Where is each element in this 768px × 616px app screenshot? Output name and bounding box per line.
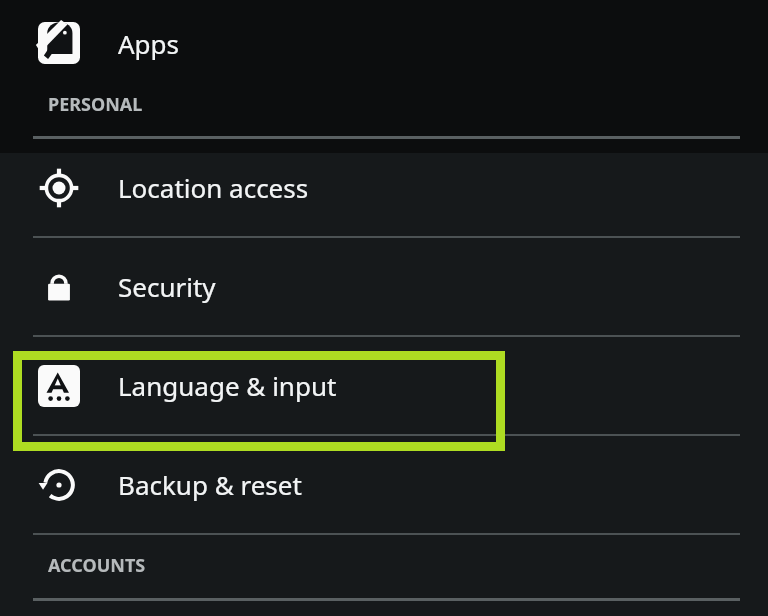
button[interactable]: Language & input highlighted [13, 351, 505, 451]
staticText: Location access [118, 170, 309, 205]
staticText: Backup & reset [118, 467, 302, 502]
staticText: PERSONAL [48, 92, 143, 117]
button[interactable]: Backup & reset [0, 436, 768, 533]
button[interactable]: Location access [0, 139, 768, 236]
button[interactable]: Apps [0, 0, 768, 86]
staticText: Language & input [118, 368, 337, 403]
button[interactable]: Security [0, 238, 768, 335]
staticText: Apps [118, 26, 180, 61]
staticText: ACCOUNTS [48, 553, 146, 578]
staticText: Security [118, 269, 216, 304]
button[interactable]: Language & input [0, 337, 768, 434]
